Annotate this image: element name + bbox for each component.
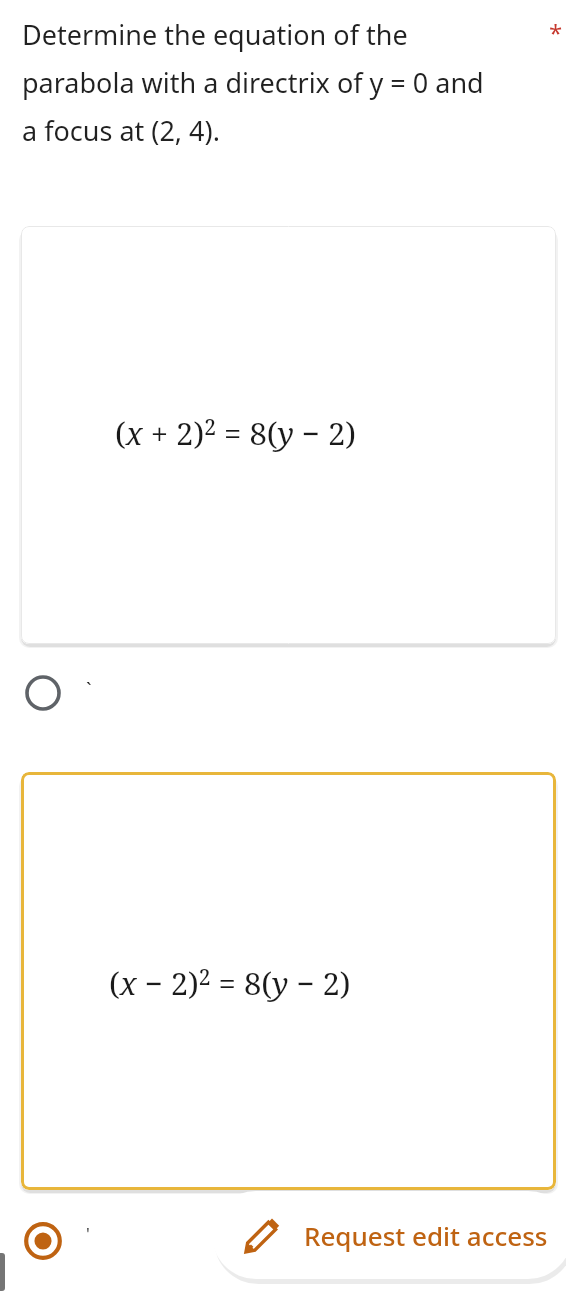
other: Edit [242, 1215, 282, 1255]
button[interactable]: Option (x + 2)^2 = 8(y - 2) [21, 671, 65, 715]
staticText: a focus at (2, 4). [22, 112, 220, 149]
staticText: ` [86, 676, 92, 703]
staticText: * [549, 16, 563, 49]
staticText: (x + 2)2 = 8(y − 2) [115, 412, 356, 454]
staticText: (x − 2)2 = 8(y − 2) [109, 962, 351, 1004]
staticText: Request edit access [304, 1218, 548, 1253]
button[interactable]: Edit [212, 1191, 566, 1279]
button[interactable]: (x − 2)2 = 8(y − 2) [21, 772, 556, 1190]
button[interactable]: Option (x - 2)^2 = 8(y - 2), selected [21, 1219, 65, 1263]
staticText: ' [86, 1222, 90, 1245]
button[interactable]: (x + 2)2 = 8(y − 2) [21, 226, 556, 644]
staticText: Determine the equation of the [22, 16, 408, 53]
staticText: parabola with a directrix of y = 0 and [22, 64, 484, 101]
